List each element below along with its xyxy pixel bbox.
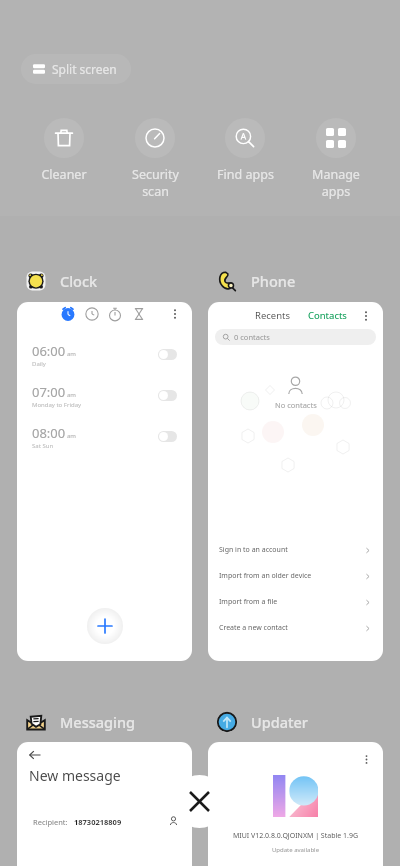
staticText: Import from a file — [219, 597, 278, 607]
staticText: Security scan — [132, 166, 179, 199]
button[interactable]: More options — [360, 753, 373, 766]
button[interactable]: Import from an older device — [208, 563, 383, 589]
staticText: Sat Sun — [32, 442, 54, 450]
button[interactable]: Recents — [208, 302, 383, 661]
staticText: 0 contacts — [234, 332, 270, 342]
staticText: Split screen — [52, 61, 117, 77]
button[interactable]: Add alarm — [87, 608, 123, 644]
button[interactable]: Sign in to an account — [208, 537, 383, 563]
button[interactable]: Tab — [132, 307, 146, 321]
button[interactable]: Toggle alarm — [158, 349, 177, 360]
staticText: Sign in to an account — [219, 545, 288, 555]
staticText: MIUI V12.0.8.0.QJOINXM | Stable 1.9G — [208, 831, 383, 841]
button[interactable]: Cleaner — [21, 118, 107, 183]
button[interactable]: Updater — [216, 709, 308, 735]
staticText: Updater — [251, 712, 308, 732]
button[interactable]: 08:00 — [17, 416, 192, 457]
button[interactable]: Split screen — [21, 54, 131, 84]
staticText: Recipient: — [33, 817, 68, 827]
staticText: Update available — [208, 846, 383, 854]
button[interactable]: Toggle alarm — [158, 390, 177, 401]
staticText: 06:00 — [32, 342, 66, 360]
button[interactable]: 07:00 — [17, 375, 192, 416]
button[interactable]: Close all apps — [173, 775, 226, 828]
button[interactable]: Create a new contact — [208, 615, 383, 641]
staticText: Monday to Friday — [32, 401, 82, 409]
button[interactable]: Import from a file — [208, 589, 383, 615]
staticText: 07:00 — [32, 383, 66, 401]
staticText: Import from an older device — [219, 571, 312, 581]
button[interactable]: More options — [208, 742, 383, 866]
button[interactable]: Manage apps — [293, 118, 379, 199]
staticText: No contacts — [275, 400, 317, 410]
staticText: Manage apps — [312, 166, 360, 199]
staticText: 08:00 — [32, 424, 66, 442]
staticText: Create a new contact — [219, 623, 288, 633]
button[interactable]: Alarm tab — [61, 307, 75, 321]
staticText: am — [67, 432, 76, 440]
staticText: Cleaner — [41, 166, 87, 183]
staticText: Find apps — [217, 166, 274, 183]
button[interactable]: Security scan — [112, 118, 198, 199]
staticText: New message — [29, 766, 121, 785]
button[interactable]: More options — [359, 309, 373, 323]
button[interactable]: 06:00 — [17, 334, 192, 375]
button[interactable]: Back — [29, 749, 41, 761]
staticText: Clock — [60, 271, 98, 291]
button[interactable]: Phone — [216, 268, 296, 294]
button[interactable]: Tab — [85, 307, 99, 321]
staticText: Recents — [255, 309, 291, 322]
button[interactable]: Alarm tab — [17, 302, 192, 661]
staticText: am — [67, 391, 76, 399]
button[interactable]: More options — [168, 307, 182, 321]
staticText: Contacts — [308, 309, 347, 322]
staticText: Daily — [32, 360, 46, 368]
button[interactable]: Messaging — [25, 709, 136, 735]
staticText: Messaging — [60, 712, 136, 732]
button[interactable]: Find apps — [202, 118, 288, 183]
button[interactable]: 0 contacts — [215, 329, 376, 345]
button[interactable]: Toggle alarm — [158, 431, 177, 442]
button[interactable]: Clock — [25, 268, 98, 294]
staticText: Phone — [251, 271, 296, 291]
staticText: am — [67, 350, 76, 358]
button[interactable]: Tab — [108, 307, 122, 321]
button[interactable]: Pick contact — [168, 816, 179, 827]
button[interactable]: Back — [17, 742, 192, 866]
staticText: 18730218809 — [74, 817, 122, 827]
